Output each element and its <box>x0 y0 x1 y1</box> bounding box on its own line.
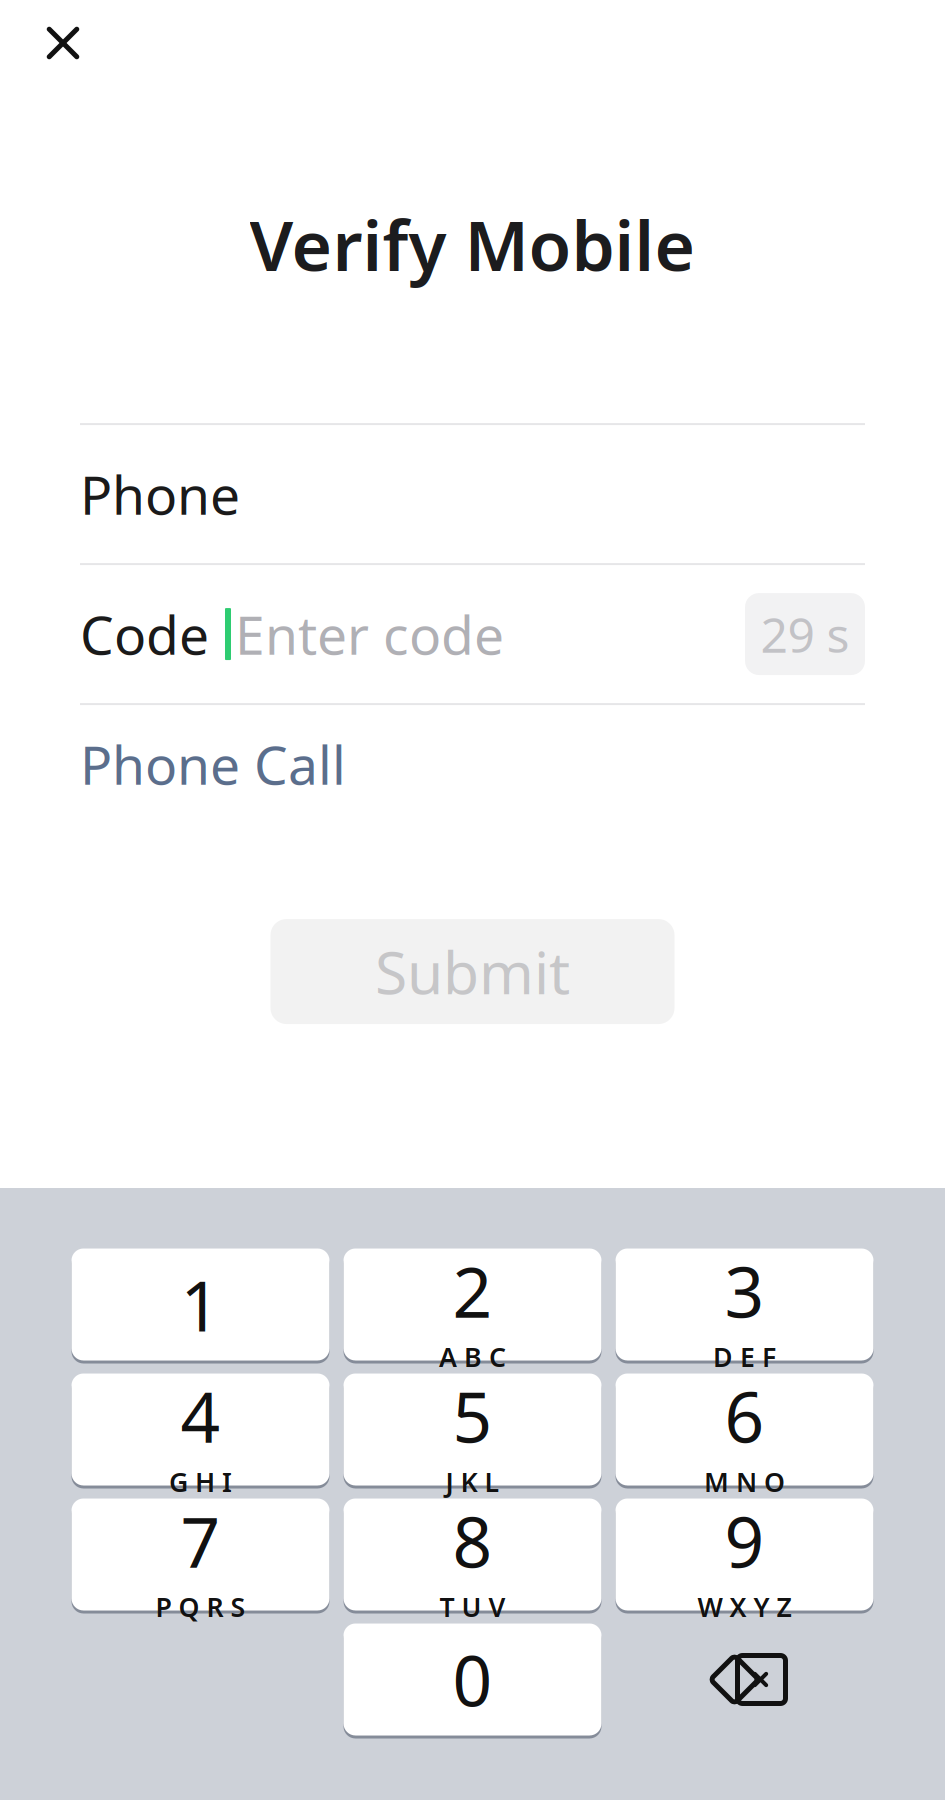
staticText: W X Y Z <box>697 1589 791 1624</box>
button[interactable]: Close <box>20 0 106 86</box>
staticText: J K L <box>445 1464 499 1499</box>
staticText: A B C <box>439 1339 506 1374</box>
staticText: T U V <box>439 1589 505 1624</box>
staticText: P Q R S <box>155 1589 245 1624</box>
staticText: 29 s <box>760 602 849 666</box>
staticText: M N O <box>704 1464 785 1499</box>
staticText: 2 <box>452 1245 492 1337</box>
staticText: D E F <box>713 1339 776 1374</box>
button[interactable]: 1 <box>71 1248 329 1360</box>
button[interactable]: 0 <box>343 1623 601 1735</box>
button[interactable]: Delete <box>615 1623 873 1735</box>
button[interactable]: 5 <box>343 1373 601 1485</box>
staticText: Enter code <box>235 599 504 669</box>
staticText: 1 <box>180 1258 220 1351</box>
staticText: 6 <box>724 1370 764 1462</box>
staticText: Phone <box>80 459 240 529</box>
staticText: 5 <box>452 1370 492 1462</box>
button[interactable]: 8 <box>343 1498 601 1610</box>
button[interactable]: 3 <box>615 1248 873 1360</box>
staticText: 9 <box>724 1495 764 1587</box>
staticText: 4 <box>180 1370 220 1462</box>
button[interactable]: Submit <box>270 919 674 1024</box>
button[interactable]: 9 <box>615 1498 873 1610</box>
button[interactable]: 7 <box>71 1498 329 1610</box>
staticText: 0 <box>452 1633 492 1726</box>
button[interactable]: Phone Call <box>80 711 346 817</box>
staticText: 8 <box>452 1495 492 1587</box>
staticText: Code <box>80 599 209 669</box>
staticText: Phone Call <box>80 729 346 799</box>
button[interactable]: 6 <box>615 1373 873 1485</box>
staticText: Submit <box>375 933 570 1010</box>
staticText: G H I <box>169 1464 232 1499</box>
staticText: 3 <box>724 1245 764 1337</box>
staticText: Verify Mobile <box>249 198 695 290</box>
button[interactable]: 4 <box>71 1373 329 1485</box>
button[interactable]: 2 <box>343 1248 601 1360</box>
staticText: 7 <box>180 1495 220 1587</box>
